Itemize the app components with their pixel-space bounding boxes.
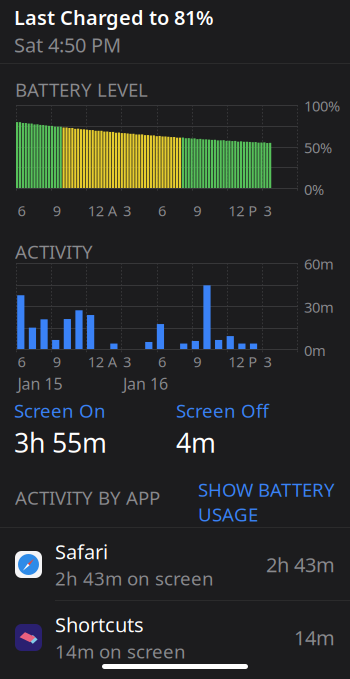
staticText: 6 [158,201,166,220]
staticText: 3 [263,201,271,220]
button[interactable]: Safari [0,528,350,601]
staticText: 3 [263,352,271,371]
staticText: 9 [193,201,201,220]
staticText: Safari [55,538,108,565]
staticText: 2h 43m [266,551,335,578]
staticText: 60m [304,254,334,273]
staticText: 12 A [88,201,117,220]
staticText: 0% [304,179,324,199]
staticText: 12 P [228,201,257,220]
staticText: 4m [176,425,216,460]
staticText: BATTERY LEVEL [15,77,148,102]
staticText: Shortcuts [55,611,144,638]
staticText: 14m on screen [55,639,186,664]
button[interactable]: SHOW BATTERY USAGE [192,477,335,527]
staticText: 30m [304,297,334,317]
staticText: ACTIVITY BY APP [15,485,160,510]
staticText: Screen On [14,398,106,423]
staticText: 0m [304,340,326,360]
staticText: 2h 43m on screen [55,566,214,591]
button[interactable]: Shortcuts [0,601,350,674]
staticText: Jan 16 [123,373,168,394]
staticText: SHOW BATTERY USAGE [198,477,335,527]
staticText: 9 [193,352,201,371]
staticText: 3 [123,201,131,220]
staticText: Sat 4:50 PM [14,32,121,58]
staticText: 6 [17,352,25,371]
staticText: 50% [304,138,332,157]
staticText: 100% [304,96,340,115]
staticText: 12 P [228,352,257,371]
staticText: ACTIVITY [15,239,93,264]
staticText: Last Charged to 81% [14,4,214,31]
staticText: 3h 55m [14,425,107,460]
staticText: 3 [123,352,131,371]
staticText: 9 [53,201,61,220]
staticText: 14m [294,624,335,651]
staticText: 12 A [88,352,117,371]
staticText: 6 [17,201,25,220]
staticText: 6 [158,352,166,371]
staticText: Jan 15 [17,373,62,394]
staticText: 9 [53,352,61,371]
staticText: Screen Off [176,398,269,423]
